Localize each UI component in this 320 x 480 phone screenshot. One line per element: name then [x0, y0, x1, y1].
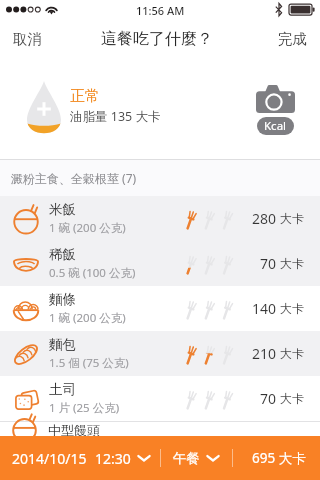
button[interactable]: 取消 [13, 20, 42, 58]
staticText: 11:56 AM [136, 3, 185, 18]
staticText: 70 [260, 254, 277, 273]
staticText: 210 [252, 344, 277, 363]
button[interactable]: 土司 [0, 376, 320, 421]
staticText: Kcal [264, 118, 287, 134]
staticText: 140 [252, 299, 277, 318]
staticText: 大卡 [280, 391, 304, 406]
staticText: 12:30 [95, 449, 131, 468]
button[interactable]: 2014/10/15 [0, 436, 161, 480]
staticText: 正常 [70, 87, 100, 106]
staticText: 大卡 [280, 346, 304, 361]
staticText: 2014/10/15 [12, 449, 87, 468]
staticText: 澱粉主食、全穀根莖 (7) [11, 170, 137, 186]
button[interactable]: 完成 [278, 20, 307, 58]
staticText: 麵條 [49, 291, 76, 308]
staticText: 油脂量 135 大卡 [70, 108, 161, 125]
staticText: 1 碗 (200 公克) [49, 310, 126, 326]
staticText: 土司 [49, 381, 76, 398]
staticText: 70 [260, 389, 277, 408]
button[interactable]: 麵包 [0, 331, 320, 376]
staticText: 1 片 (25 公克) [49, 400, 120, 416]
button[interactable]: Take photo to estimate Kcal [256, 85, 295, 135]
staticText: 取消 [13, 30, 42, 48]
staticText: 大卡 [280, 211, 304, 226]
button[interactable]: 米飯 [0, 196, 320, 241]
button[interactable]: 午餐 [161, 436, 232, 480]
button[interactable]: 中型饅頭 [0, 422, 320, 436]
staticText: 完成 [278, 30, 307, 48]
staticText: 280 [252, 209, 277, 228]
staticText: 695 大卡 [252, 449, 306, 467]
staticText: 稀飯 [49, 246, 76, 263]
staticText: 1.5 個 (75 公克) [49, 355, 129, 371]
staticText: 米飯 [49, 201, 76, 218]
button[interactable]: 稀飯 [0, 241, 320, 286]
staticText: 1 碗 (200 公克) [49, 220, 126, 236]
staticText: 0.5 碗 (100 公克) [49, 265, 136, 281]
staticText: 午餐 [173, 450, 200, 467]
staticText: 這餐吃了什麼？ [101, 29, 213, 49]
button[interactable]: 麵條 [0, 286, 320, 331]
staticText: 麵包 [49, 336, 76, 353]
staticText: 中型饅頭 [48, 422, 100, 436]
button[interactable]: Add oil [27, 81, 61, 137]
staticText: 大卡 [280, 256, 304, 271]
staticText: 大卡 [280, 301, 304, 316]
